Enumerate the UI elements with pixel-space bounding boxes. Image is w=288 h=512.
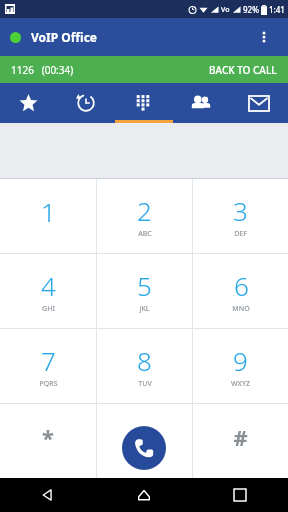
button[interactable]: 8 — [97, 329, 192, 403]
staticText: 8 — [137, 343, 152, 378]
staticText: 4 — [41, 268, 56, 303]
button[interactable]: Home — [96, 478, 192, 512]
button[interactable]: Recents — [57, 83, 114, 123]
staticText: 1126 (00:34) — [11, 63, 74, 77]
button[interactable]: 5 — [97, 254, 192, 328]
staticText: GHI — [42, 304, 55, 314]
button[interactable]: Back — [0, 478, 96, 512]
staticText: 2 — [137, 193, 152, 228]
button[interactable]: 7 — [0, 329, 96, 403]
staticText: 9 — [233, 343, 248, 378]
staticText: 3 — [233, 193, 248, 228]
button[interactable]: 0 — [97, 404, 192, 478]
button[interactable]: # — [193, 404, 288, 478]
staticText: + — [142, 454, 147, 464]
button[interactable]: * — [0, 404, 96, 478]
button[interactable]: 9 — [193, 329, 288, 403]
button[interactable]: More options — [250, 23, 278, 51]
button[interactable]: 3 — [193, 179, 288, 253]
button[interactable]: Favorites — [0, 83, 57, 123]
button[interactable]: Call — [122, 426, 166, 470]
staticText: 92% — [243, 4, 259, 15]
staticText: JKL — [139, 304, 150, 314]
staticText: BACK TO CALL — [209, 63, 277, 77]
staticText: DEF — [234, 229, 247, 239]
staticText: PQRS — [39, 379, 58, 389]
button[interactable]: 6 — [193, 254, 288, 328]
button[interactable]: Recent apps — [192, 478, 288, 512]
staticText: 1:41 — [269, 4, 285, 15]
staticText: Vo — [221, 5, 230, 15]
staticText: 7 — [41, 343, 56, 378]
button[interactable]: Dialpad — [114, 83, 172, 123]
staticText: 5 — [137, 268, 152, 303]
button[interactable]: Voicemail — [230, 83, 288, 123]
staticText: * — [42, 422, 54, 452]
button[interactable]: 4 — [0, 254, 96, 328]
staticText: TUV — [138, 379, 152, 389]
staticText: 6 — [234, 268, 249, 303]
staticText: ABC — [138, 229, 152, 239]
staticText: WXYZ — [231, 379, 250, 389]
staticText: MNO — [232, 304, 250, 314]
button[interactable]: 2 — [97, 179, 192, 253]
button[interactable]: Contacts — [172, 83, 230, 123]
staticText: # — [233, 422, 248, 452]
staticText: VoIP Office — [31, 29, 98, 45]
staticText: 1 — [41, 194, 56, 229]
staticText: 0 — [137, 418, 152, 453]
button[interactable]: 1126 (00:34) — [0, 56, 288, 83]
button[interactable]: 1 — [0, 179, 96, 253]
